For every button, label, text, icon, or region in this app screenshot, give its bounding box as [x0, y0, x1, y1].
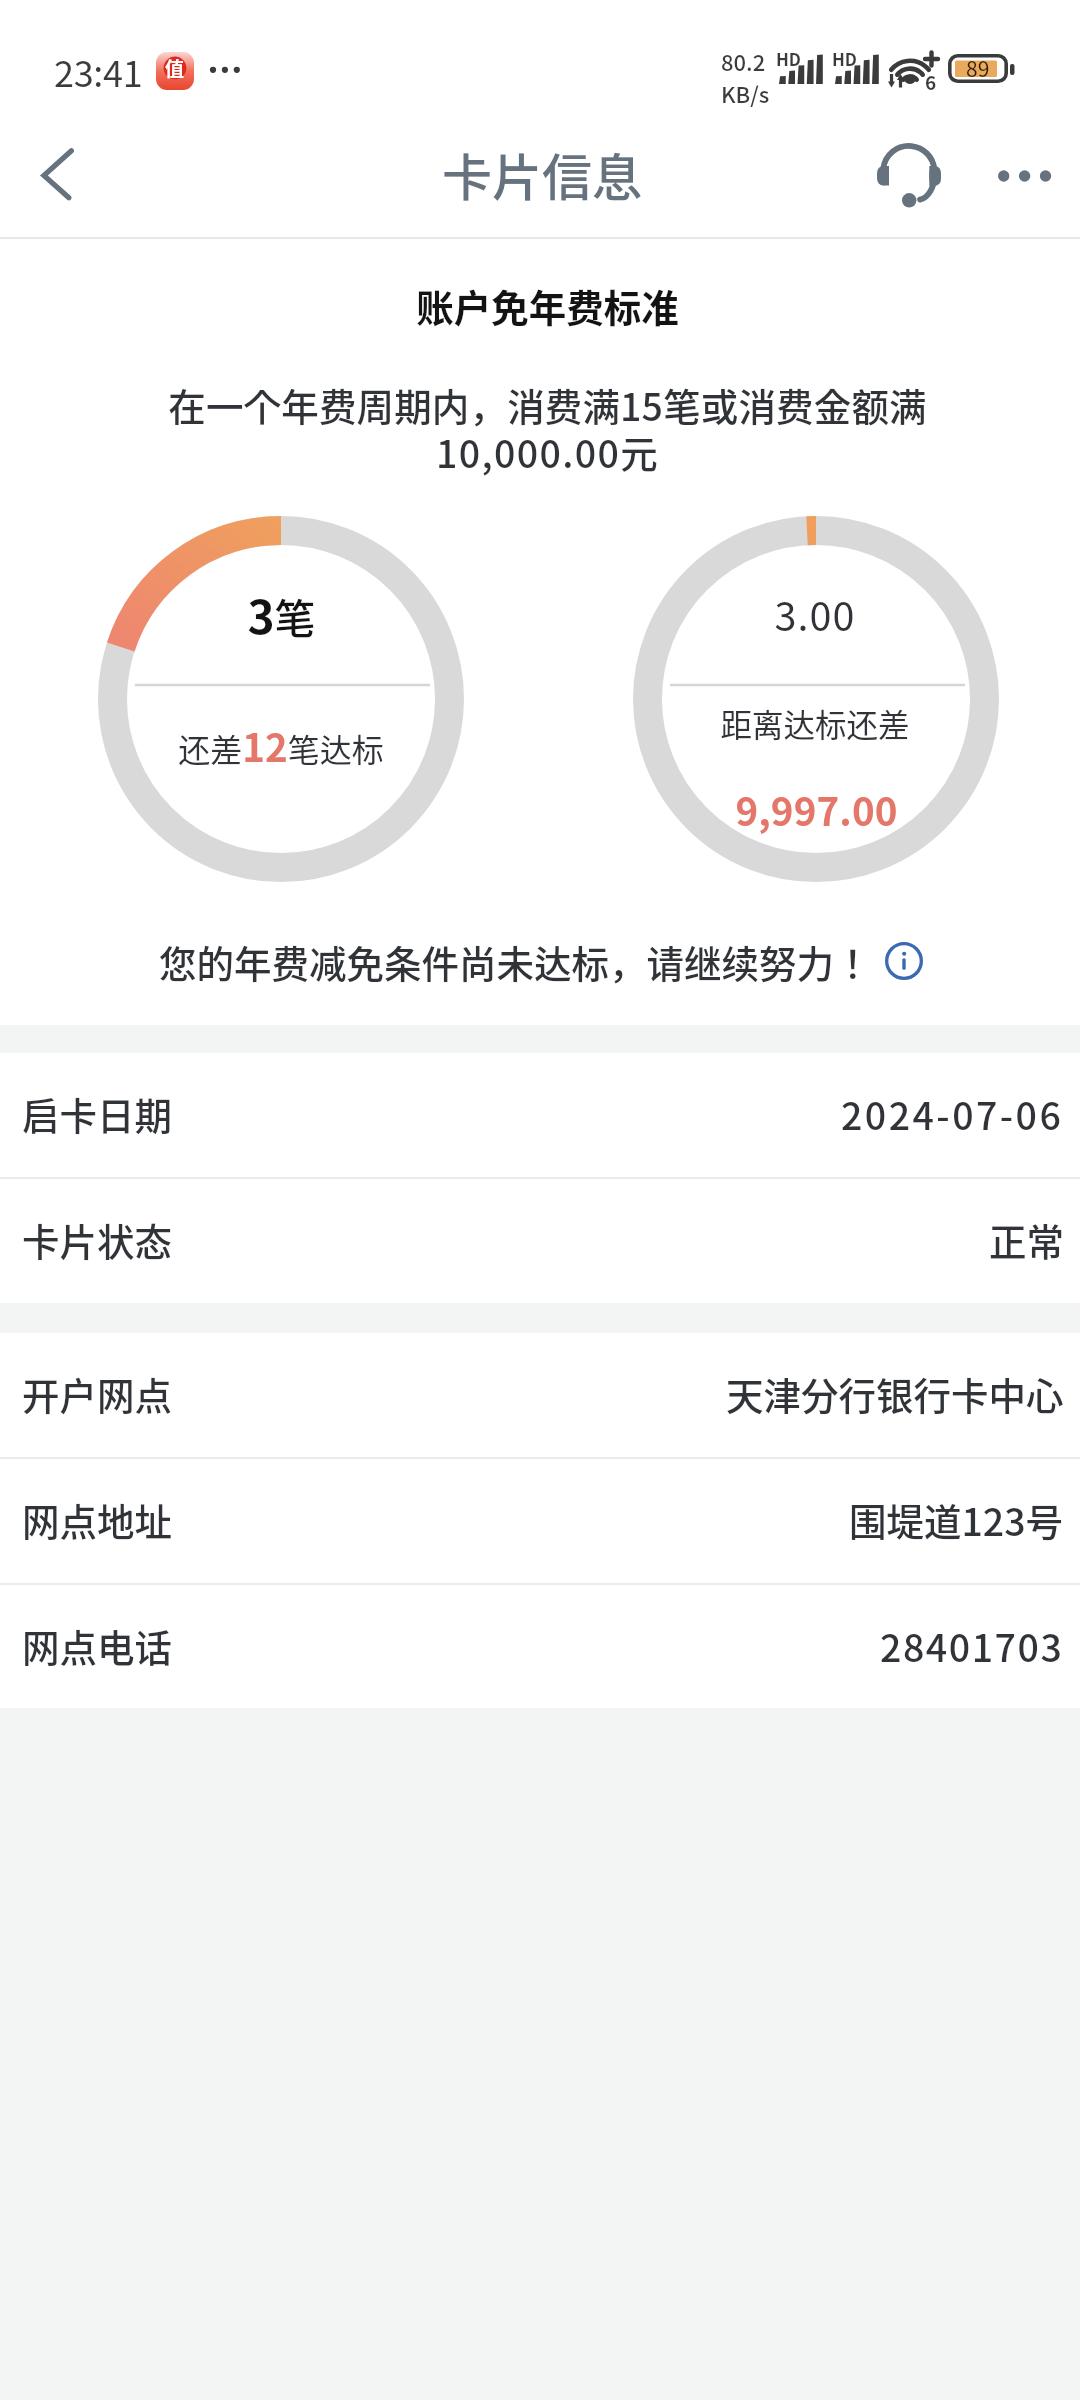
button[interactable]: 卡片状态 — [0, 1179, 1080, 1303]
staticText: 89 — [966, 53, 990, 83]
staticText: 距离达标还差 — [720, 700, 910, 746]
staticText: 9,997.00 — [735, 781, 898, 837]
staticText: 80.2 — [721, 45, 766, 77]
staticText: 账户免年费标准 — [416, 278, 679, 332]
button[interactable]: Customer service — [845, 112, 970, 237]
staticText: 6 — [925, 68, 937, 96]
staticText: 10,000.00元 — [436, 424, 659, 478]
staticText: 卡片信息 — [442, 138, 642, 210]
staticText: KB/s — [721, 77, 770, 109]
staticText: 您的年费减免条件尚未达标，请继续努力！ — [159, 934, 872, 988]
button[interactable]: Back — [0, 112, 118, 237]
staticText: 开户网点 — [22, 1366, 172, 1420]
staticText: 23:41 — [54, 45, 143, 97]
staticText: 卡片状态 — [22, 1212, 172, 1266]
staticText: 3.00 — [774, 585, 856, 642]
button[interactable]: 启卡日期 — [0, 1053, 1080, 1177]
staticText: 天津分行银行卡中心 — [726, 1366, 1064, 1420]
button[interactable]: 网点电话 — [0, 1585, 1080, 1708]
button[interactable]: 开户网点 — [0, 1333, 1080, 1457]
button[interactable]: 网点地址 — [0, 1459, 1080, 1583]
staticText: 值 — [165, 54, 185, 82]
staticText: 正常 — [989, 1212, 1064, 1266]
button[interactable]: Info — [876, 933, 932, 989]
staticText: 2024-07-06 — [841, 1086, 1064, 1140]
staticText: 围堤道123号 — [849, 1492, 1064, 1546]
staticText: 启卡日期 — [22, 1086, 172, 1140]
staticText: 网点电话 — [22, 1618, 172, 1672]
staticText: HD — [832, 46, 858, 71]
button[interactable]: More options — [970, 112, 1080, 237]
staticText: 在一个年费周期内，消费满15笔或消费金额满 — [168, 377, 927, 431]
staticText: 3笔 — [247, 581, 316, 648]
staticText: 28401703 — [880, 1618, 1064, 1672]
staticText: HD — [776, 46, 802, 71]
staticText: 还差12笔达标 — [178, 717, 384, 773]
staticText: 网点地址 — [22, 1492, 172, 1546]
